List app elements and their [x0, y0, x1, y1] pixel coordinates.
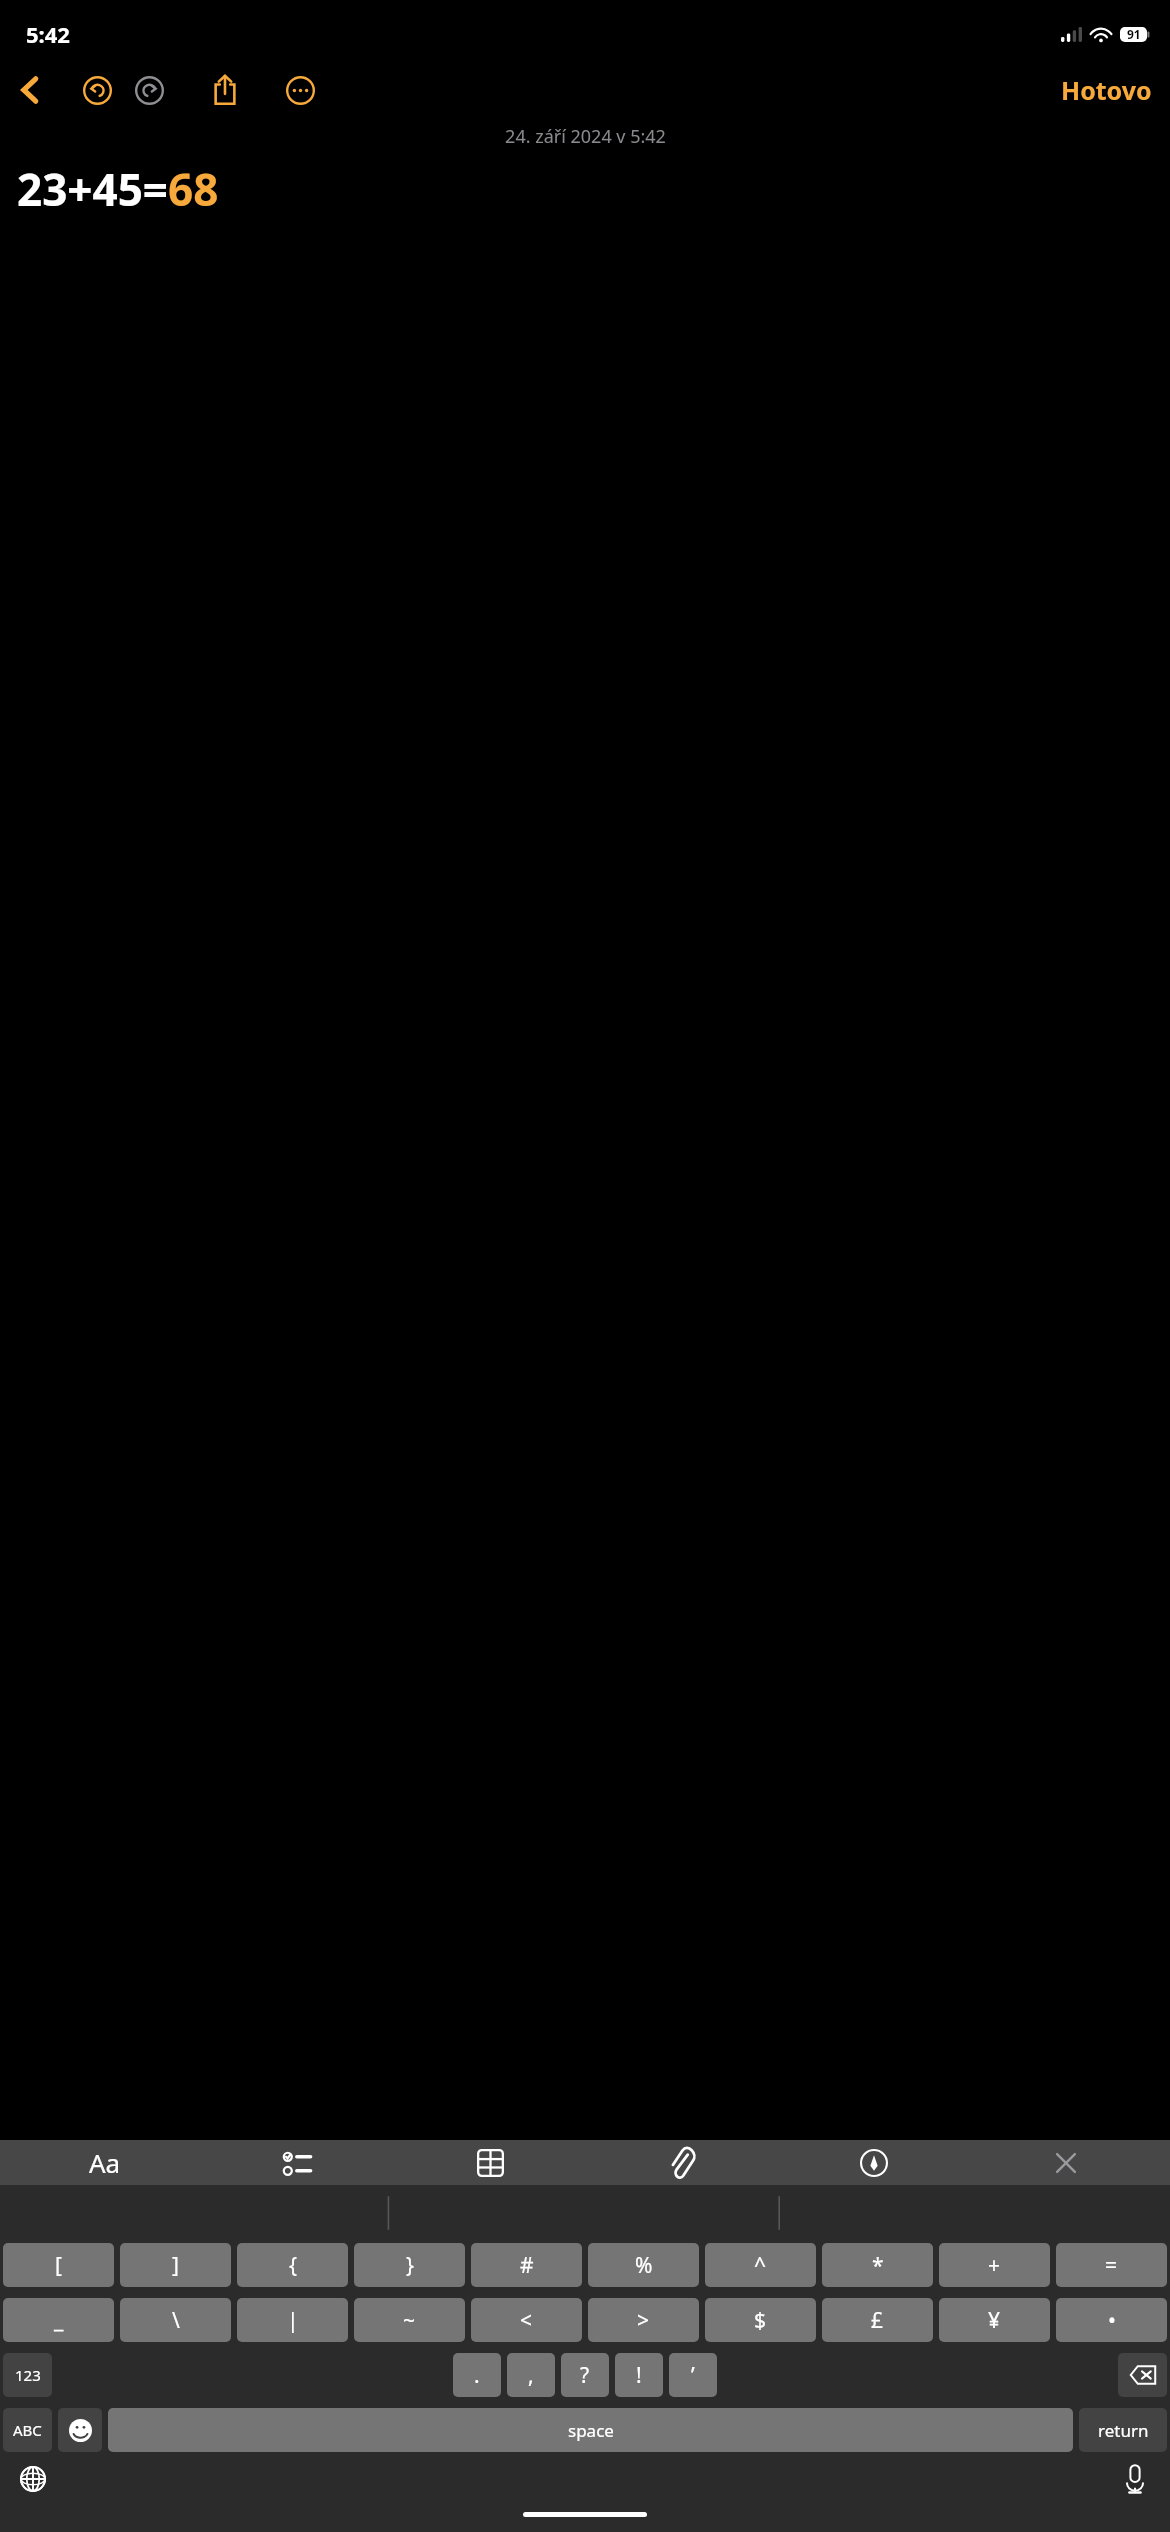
button[interactable]: > — [588, 2298, 699, 2342]
staticText: 123 — [15, 2365, 41, 2385]
button[interactable]: . — [453, 2353, 501, 2397]
button[interactable]: Hotovo — [1055, 67, 1158, 113]
button[interactable]: ABC — [3, 2408, 52, 2452]
staticText: ABC — [13, 2420, 42, 2440]
button[interactable]: | — [237, 2298, 348, 2342]
staticText: $ — [754, 2306, 767, 2335]
staticText: [ — [55, 2251, 62, 2280]
staticText: = — [1105, 2251, 1118, 2280]
button[interactable]: ] — [120, 2243, 231, 2287]
button[interactable]: space — [108, 2408, 1073, 2452]
staticText: * — [872, 2251, 884, 2280]
staticText: , — [528, 2361, 534, 2390]
button[interactable]: • — [1056, 2298, 1167, 2342]
button[interactable]: Back — [4, 64, 56, 116]
button[interactable]: Text format — [8, 2140, 201, 2185]
button[interactable]: £ — [822, 2298, 933, 2342]
button[interactable]: Attach — [586, 2140, 778, 2185]
button[interactable]: Change keyboard — [10, 2456, 56, 2502]
staticText: £ — [871, 2306, 884, 2335]
staticText: ] — [172, 2251, 179, 2280]
staticText: space — [568, 2419, 614, 2442]
staticText: ? — [580, 2361, 590, 2390]
button[interactable]: \ — [120, 2298, 231, 2342]
button[interactable]: } — [354, 2243, 465, 2287]
button[interactable]: { — [237, 2243, 348, 2287]
staticText: 24. září 2024 v 5:42 — [505, 124, 666, 149]
button[interactable]: ~ — [354, 2298, 465, 2342]
staticText: ~ — [403, 2306, 416, 2335]
button[interactable]: $ — [705, 2298, 816, 2342]
button[interactable]: _ — [3, 2298, 114, 2342]
button[interactable]: < — [471, 2298, 582, 2342]
staticText: ’ — [691, 2361, 695, 2390]
button[interactable]: , — [507, 2353, 555, 2397]
button[interactable]: 123 — [3, 2353, 52, 2397]
staticText: | — [287, 2306, 299, 2335]
button[interactable]: Table — [394, 2140, 586, 2185]
staticText: } — [406, 2251, 414, 2280]
button[interactable]: ’ — [669, 2353, 717, 2397]
button[interactable]: + — [939, 2243, 1050, 2287]
button[interactable]: Dictate — [1112, 2456, 1158, 2502]
button[interactable]: Emoji — [58, 2408, 102, 2452]
button[interactable]: 23+45=68 — [17, 159, 1153, 219]
staticText: { — [289, 2251, 297, 2280]
button[interactable]: Share — [199, 64, 251, 116]
staticText: < — [520, 2306, 533, 2335]
button[interactable]: Backspace — [1118, 2353, 1167, 2397]
staticText: 91 — [1127, 26, 1141, 42]
staticText: Aa — [89, 2145, 121, 2180]
button[interactable]: Close — [970, 2140, 1162, 2185]
staticText: . — [474, 2361, 480, 2390]
button[interactable]: ¥ — [939, 2298, 1050, 2342]
button[interactable]: Redo — [123, 64, 175, 116]
staticText: + — [988, 2251, 1001, 2280]
button[interactable]: ! — [615, 2353, 663, 2397]
staticText: \ — [172, 2306, 180, 2335]
button[interactable]: More — [274, 64, 326, 116]
staticText: ¥ — [988, 2306, 1001, 2335]
button[interactable]: # — [471, 2243, 582, 2287]
button[interactable]: = — [1056, 2243, 1167, 2287]
button[interactable]: Undo — [71, 64, 123, 116]
staticText: ^ — [754, 2251, 767, 2280]
staticText: ! — [636, 2361, 642, 2390]
button[interactable]: Checklist — [201, 2140, 394, 2185]
button[interactable]: % — [588, 2243, 699, 2287]
staticText: return — [1098, 2419, 1149, 2442]
staticText: 23+45=68 — [17, 159, 219, 219]
staticText: % — [635, 2251, 653, 2280]
staticText: # — [520, 2251, 534, 2280]
button[interactable]: ? — [561, 2353, 609, 2397]
button[interactable]: ^ — [705, 2243, 816, 2287]
staticText: _ — [54, 2306, 64, 2335]
button[interactable]: Markup — [778, 2140, 970, 2185]
staticText: > — [637, 2306, 650, 2335]
button[interactable]: return — [1079, 2408, 1167, 2452]
staticText: • — [1108, 2306, 1116, 2335]
button[interactable]: * — [822, 2243, 933, 2287]
staticText: 5:42 — [26, 19, 70, 49]
staticText: Hotovo — [1061, 73, 1152, 107]
button[interactable]: [ — [3, 2243, 114, 2287]
